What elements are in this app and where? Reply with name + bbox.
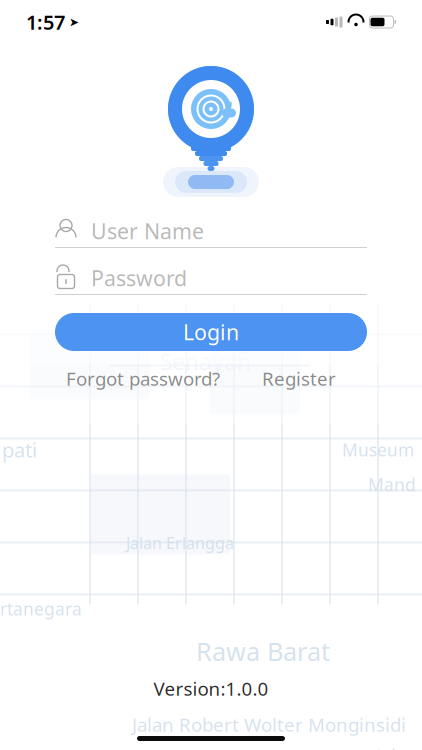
staticText: Rawa Barat	[196, 634, 330, 668]
staticText: Jalan Robert Wolter Monginsidi	[132, 712, 406, 737]
staticText: 1:57	[26, 9, 65, 35]
button[interactable]: User Name	[55, 215, 367, 248]
staticText: Password	[91, 264, 187, 292]
button[interactable]: Password	[55, 262, 367, 295]
staticText: Jalan	[376, 743, 418, 750]
staticText: User Name	[91, 217, 204, 245]
button[interactable]: Login	[55, 313, 367, 351]
staticText: Senayan	[160, 346, 251, 376]
staticText: pati	[2, 436, 37, 463]
button[interactable]: Forgot password?	[66, 366, 220, 391]
staticText: Version:1.0.0	[153, 676, 268, 701]
button[interactable]: Register	[262, 366, 336, 391]
staticText: Museum	[342, 438, 414, 461]
staticText: Forgot password?	[66, 366, 220, 391]
staticText: rtanegara	[0, 597, 82, 620]
staticText: Register	[262, 366, 336, 391]
staticText: Login	[183, 318, 239, 346]
staticText: Mand	[368, 473, 416, 496]
staticText: ➤	[69, 15, 79, 29]
staticText: Jalan Erlangga	[126, 532, 234, 553]
